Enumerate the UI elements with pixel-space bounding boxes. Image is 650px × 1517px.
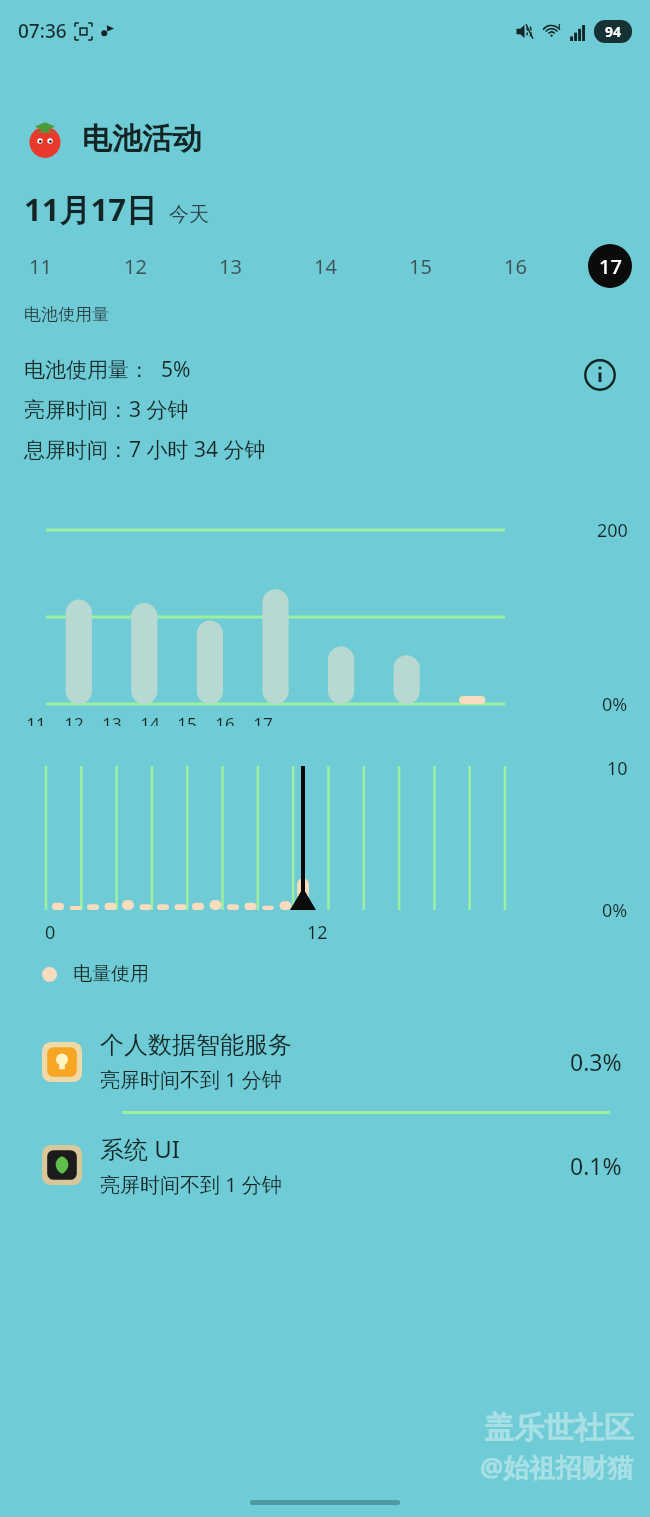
button[interactable]: 11 <box>18 244 62 288</box>
staticText: 0.3% <box>570 1046 622 1077</box>
staticText: 14 <box>314 253 337 280</box>
staticText: 16 <box>212 712 238 726</box>
staticText: 10 <box>607 756 628 781</box>
button[interactable]: More information <box>580 355 620 395</box>
staticText: 11 <box>23 712 49 726</box>
staticText: 0% <box>602 692 628 717</box>
staticText: 94 <box>605 22 622 41</box>
staticText: 12 <box>124 253 147 280</box>
button[interactable]: 15 <box>398 244 442 288</box>
staticText: 0 <box>45 920 56 945</box>
staticText: 亮屏时间不到 1 分钟 <box>100 1171 282 1198</box>
staticText: 亮屏时间不到 1 分钟 <box>100 1066 282 1093</box>
staticText: 亮屏时间：3 分钟 <box>24 395 189 424</box>
staticText: 15 <box>409 253 432 280</box>
staticText: 12 <box>307 920 328 945</box>
button[interactable]: 电池活动 <box>24 118 650 160</box>
staticText: 息屏时间：7 小时 34 分钟 <box>24 435 266 464</box>
staticText: 电池活动 <box>82 120 202 158</box>
button[interactable]: 17 <box>588 244 632 288</box>
button[interactable]: 16 <box>493 244 537 288</box>
staticText: 0.1% <box>570 1150 622 1181</box>
staticText: 14 <box>137 712 163 726</box>
staticText: 17 <box>250 712 276 726</box>
staticText: 个人数据智能服务 <box>100 1030 292 1060</box>
staticText: 电量使用 <box>73 962 149 986</box>
staticText: 200 <box>597 518 628 543</box>
staticText: 11 <box>29 253 52 280</box>
staticText: 16 <box>504 253 527 280</box>
staticText: 17 <box>599 253 622 280</box>
button[interactable]: 13 <box>208 244 252 288</box>
staticText: 今天 <box>169 202 209 227</box>
staticText: 13 <box>219 253 242 280</box>
staticText: 13 <box>99 712 125 726</box>
staticText: 07:36 <box>18 18 67 44</box>
staticText: 系统 UI <box>100 1132 180 1165</box>
staticText: 0% <box>602 898 628 923</box>
staticText: 15 <box>174 712 200 726</box>
button[interactable]: 14 <box>303 244 347 288</box>
staticText: 盖乐世社区 <box>484 1409 634 1447</box>
button[interactable]: 系统 UI <box>0 1114 650 1216</box>
staticText: @始祖招财猫 <box>480 1449 634 1485</box>
staticText: 11月17日 <box>24 188 157 230</box>
button[interactable]: 个人数据智能服务 <box>0 1012 650 1111</box>
staticText: 电池使用量： 5% <box>24 355 191 384</box>
button[interactable]: 12 <box>113 244 157 288</box>
staticText: 电池使用量 <box>24 304 109 325</box>
staticText: 12 <box>61 712 87 726</box>
